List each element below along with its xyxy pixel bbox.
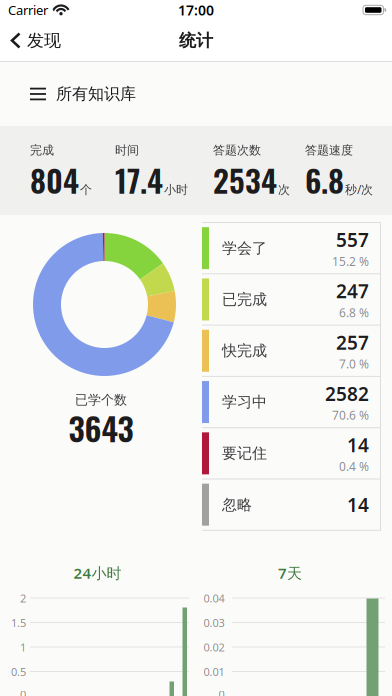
staticText: 小时	[164, 182, 188, 197]
staticText: 已完成	[222, 290, 267, 309]
staticText: 已学个数	[75, 392, 127, 408]
button[interactable]: 学习中	[202, 377, 392, 428]
staticText: 所有知识库	[56, 84, 136, 104]
staticText: 0.5	[11, 664, 26, 679]
staticText: 答题速度	[305, 143, 353, 158]
staticText: 0	[218, 687, 224, 696]
staticText: 3643	[68, 404, 133, 451]
staticText: 14	[347, 492, 369, 517]
staticText: 个	[80, 182, 92, 197]
staticText: 答题次数	[213, 143, 261, 158]
staticText: 557	[336, 227, 369, 252]
staticText: 0.03	[203, 615, 224, 630]
staticText: 17.4	[115, 157, 163, 203]
staticText: 0.01	[203, 664, 224, 679]
button[interactable]: 忽略	[202, 479, 392, 531]
staticText: 14	[347, 432, 369, 457]
staticText: 次	[278, 182, 290, 197]
staticText: 秒/次	[345, 181, 373, 197]
staticText: 7.0 %	[339, 356, 369, 372]
staticText: 7天	[278, 563, 302, 583]
staticText: 学习中	[222, 393, 267, 411]
staticText: 2534	[213, 157, 277, 203]
staticText: 学会了	[222, 239, 267, 257]
staticText: 804	[30, 157, 79, 203]
staticText: 快完成	[222, 341, 267, 360]
button[interactable]: 学会了	[202, 223, 392, 274]
staticText: 6.8	[305, 157, 344, 203]
button[interactable]: 已完成	[202, 274, 392, 326]
staticText: 0	[20, 687, 26, 696]
staticText: 统计	[179, 30, 213, 51]
staticText: 1.5	[11, 615, 26, 630]
staticText: 0.04	[203, 591, 224, 606]
staticText: 2582	[325, 381, 369, 406]
staticText: 时间	[115, 143, 139, 158]
staticText: 0.4 %	[339, 458, 369, 474]
staticText: 忽略	[222, 495, 252, 514]
staticText: 要记住	[222, 444, 267, 462]
button[interactable]: 要记住	[202, 428, 392, 479]
staticText: 24小时	[73, 563, 121, 583]
staticText: 15.2 %	[332, 253, 369, 269]
button[interactable]: 快完成	[202, 326, 392, 377]
staticText: 257	[336, 330, 369, 355]
staticText: 247	[336, 278, 369, 304]
staticText: 0.02	[203, 640, 224, 655]
staticText: 完成	[30, 143, 54, 158]
staticText: Carrier	[8, 1, 48, 19]
staticText: 70.6 %	[332, 407, 369, 423]
button[interactable]: 所有知识库	[0, 62, 392, 126]
staticText: 1	[20, 640, 26, 655]
staticText: 6.8 %	[339, 305, 369, 320]
button[interactable]: Back	[0, 30, 61, 51]
staticText: 17:00	[178, 1, 214, 19]
staticText: 2	[20, 591, 26, 606]
staticText: 发现	[27, 30, 61, 51]
